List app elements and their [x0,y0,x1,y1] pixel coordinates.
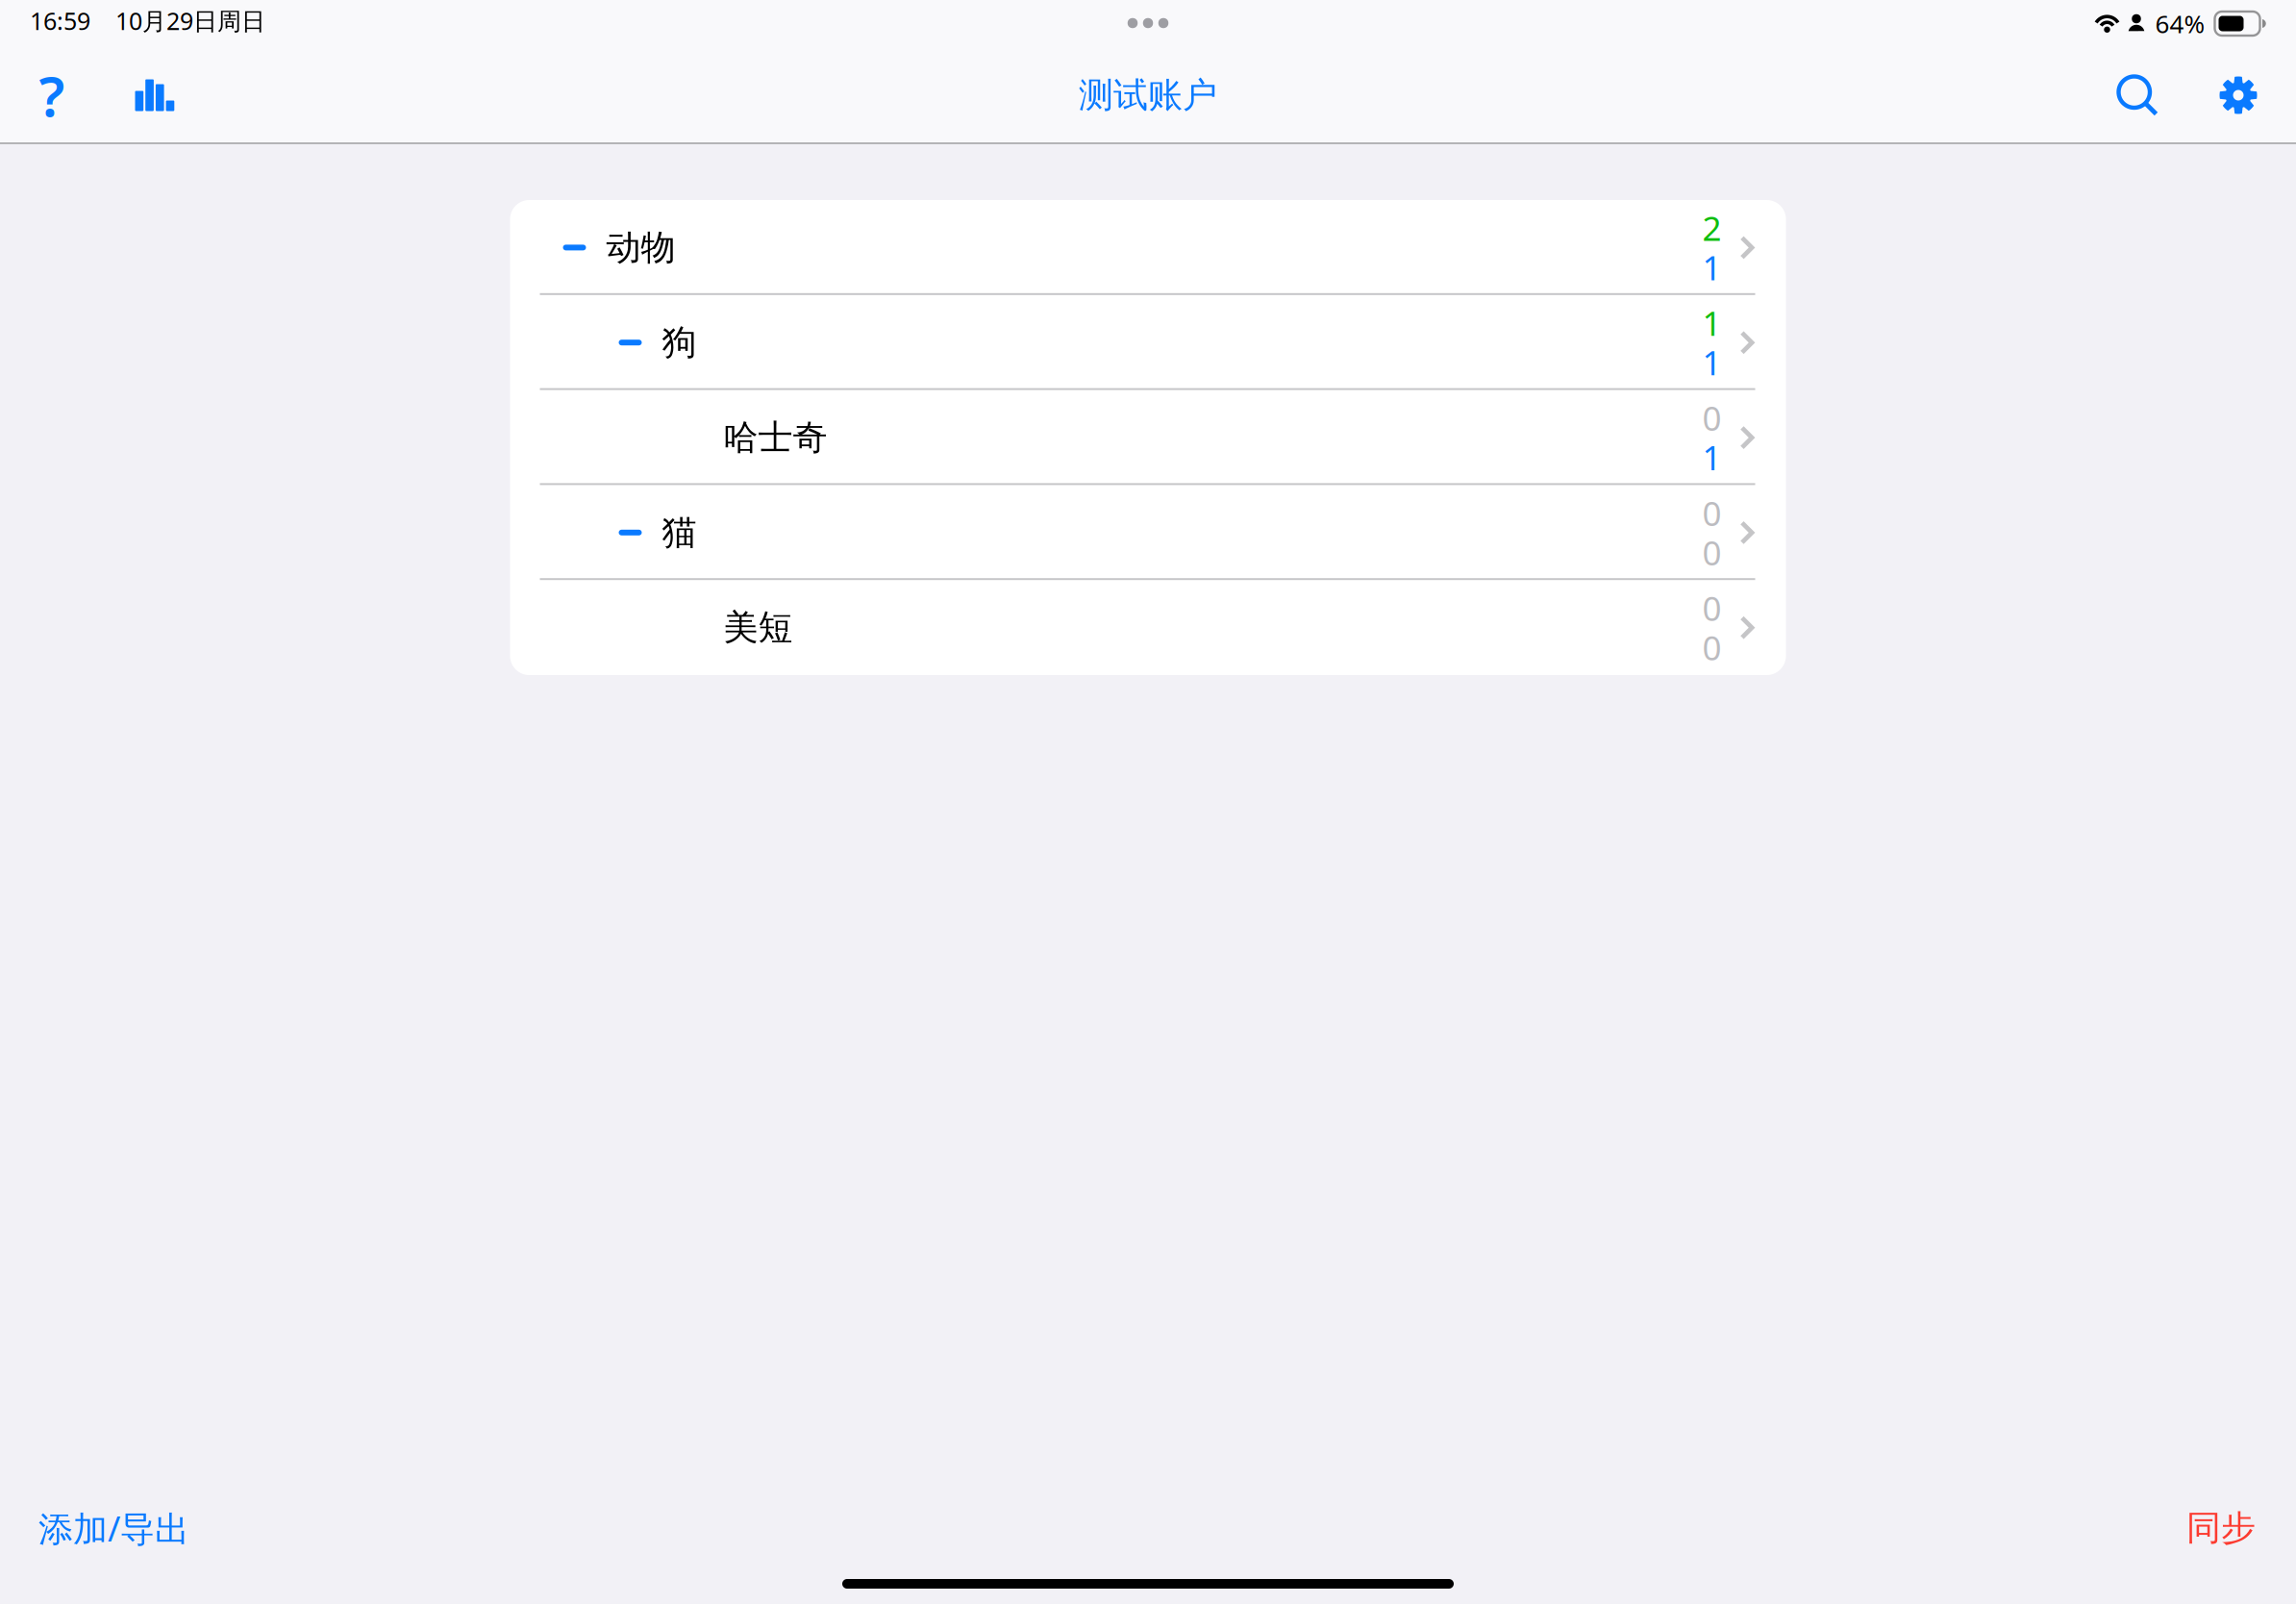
staticText: 添加/导出 [38,1504,189,1552]
button[interactable]: 狗 [510,295,1786,390]
staticText: 0 [1702,490,1722,536]
button[interactable]: 动物 [510,200,1786,295]
button[interactable]: 美短 [510,580,1786,675]
button[interactable]: 设置 [2211,57,2265,134]
button[interactable]: 猫 [510,485,1786,580]
staticText: 2 [1702,205,1722,251]
staticText: 64% [2155,7,2205,41]
staticText: 1 [1702,300,1722,346]
staticText: 测试账户 [1079,73,1217,117]
staticText: 1 [1702,339,1722,385]
staticText: 美短 [724,606,793,649]
staticText: 1 [1702,434,1722,480]
staticText: 同步 [2186,1506,2256,1550]
staticText: 哈士奇 [724,416,827,459]
staticText: 猫 [662,511,697,554]
button[interactable]: 添加/导出 [25,1491,203,1565]
button[interactable]: 哈士奇 [510,390,1786,485]
staticText: 狗 [662,321,697,364]
button[interactable]: 帮助 [25,57,79,134]
staticText: 16:59 [30,4,90,37]
button[interactable]: 搜索 [2111,57,2165,134]
button[interactable]: 同步 [2173,1493,2269,1563]
staticText: 10月29日周日 [115,4,265,37]
staticText: 0 [1702,624,1722,670]
staticText: ? [39,57,65,133]
staticText: 0 [1702,395,1722,441]
staticText: 0 [1702,585,1722,631]
staticText: 动物 [606,226,675,269]
button[interactable]: 统计 [128,55,182,136]
staticText: 1 [1702,244,1722,290]
staticText: 0 [1702,529,1722,575]
